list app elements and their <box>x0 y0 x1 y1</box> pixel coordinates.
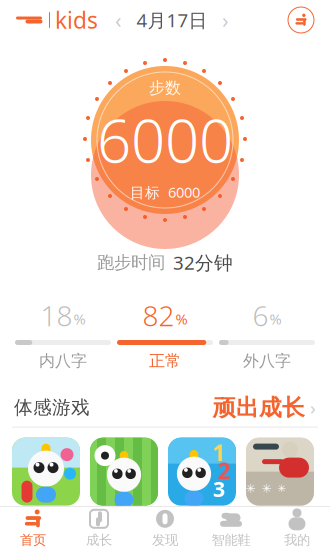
staticText: ✳ <box>277 483 286 495</box>
staticText: 正常 <box>149 351 181 371</box>
button[interactable]: 成长 <box>66 507 132 550</box>
staticText: 我的 <box>284 532 310 548</box>
button[interactable]: 智能鞋 <box>198 507 264 550</box>
button[interactable]: Soccer game <box>90 438 158 506</box>
staticText: 6 <box>252 297 268 334</box>
staticText: 6000 <box>97 100 233 179</box>
staticText: % <box>73 309 85 329</box>
button[interactable]: 我的 <box>264 507 330 550</box>
button[interactable]: Next day <box>217 9 233 31</box>
staticText: 1 <box>212 438 225 468</box>
staticText: % <box>269 309 281 329</box>
staticText: › <box>222 6 229 34</box>
staticText: 智能鞋 <box>211 532 250 548</box>
staticText: 首页 <box>20 532 46 548</box>
staticText: 2 <box>217 456 230 486</box>
staticText: 跑步时间 <box>97 252 165 273</box>
button[interactable]: Adventure game <box>246 438 314 506</box>
button[interactable]: 顽出成长 <box>213 394 316 421</box>
staticText: 发现 <box>152 532 178 548</box>
staticText: 外八字 <box>243 351 291 371</box>
staticText: 顽出成长 <box>213 394 305 421</box>
staticText: 体感游戏 <box>14 396 90 419</box>
button[interactable]: 首页 <box>0 507 66 550</box>
button[interactable]: Numbers game <box>168 438 236 506</box>
staticText: 4月17日 <box>136 8 207 32</box>
staticText: ‹ <box>115 6 122 34</box>
staticText: 18 <box>40 297 72 334</box>
staticText: 32分钟 <box>173 250 233 275</box>
button[interactable]: 发现 <box>132 507 198 550</box>
staticText: % <box>175 309 187 329</box>
staticText: ✳ <box>261 482 271 495</box>
staticText: 内八字 <box>39 351 87 371</box>
staticText: › <box>310 395 316 420</box>
button[interactable]: Previous day <box>110 9 126 31</box>
staticText: 成长 <box>86 532 112 548</box>
button[interactable]: Activity <box>286 5 316 35</box>
staticText: ✳ <box>245 482 255 495</box>
staticText: 3 <box>213 474 225 503</box>
button[interactable]: Game one <box>12 438 80 506</box>
staticText: 82 <box>142 297 174 334</box>
staticText: 步数 <box>149 78 181 98</box>
staticText: kids <box>55 5 98 35</box>
staticText: 目标 6000 <box>130 182 200 202</box>
